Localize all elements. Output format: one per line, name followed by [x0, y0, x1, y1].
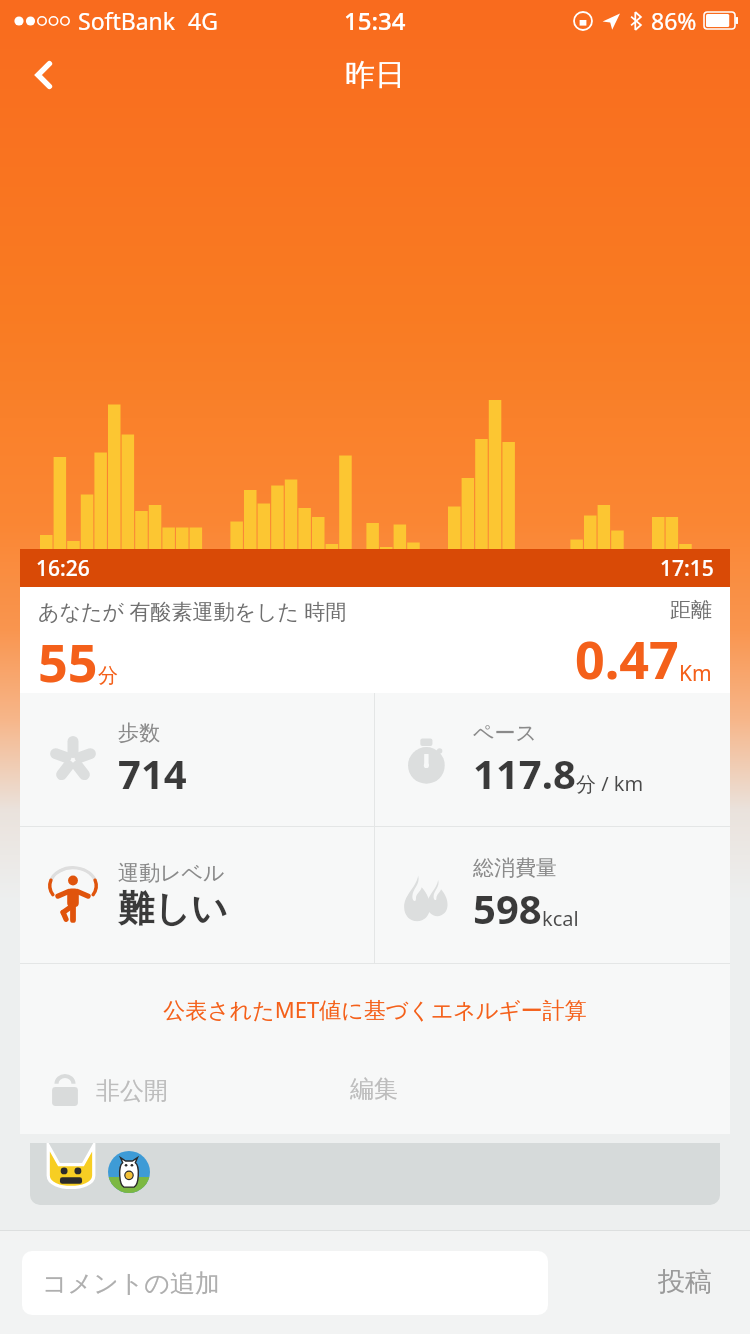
button[interactable]: 歩数 [20, 693, 374, 826]
staticText: 運動レベル [118, 860, 225, 886]
staticText: 17:15 [660, 554, 714, 583]
staticText: 15:34 [344, 4, 406, 37]
staticText: コメントの追加 [42, 1268, 220, 1299]
button[interactable] [30, 1143, 720, 1205]
staticText: 投稿 [658, 1265, 712, 1299]
staticText: 86% [651, 5, 697, 36]
staticText: kcal [542, 905, 579, 932]
staticText: 距離 [670, 597, 712, 623]
staticText: 非公開 [96, 1076, 168, 1106]
staticText: 分 [98, 663, 118, 688]
staticText: 598 [473, 881, 542, 935]
staticText: ペース [473, 720, 537, 746]
staticText: あなたが 有酸素運動をした 時間 [38, 597, 347, 626]
staticText: 714 [118, 746, 187, 800]
button[interactable]: Back [18, 49, 70, 101]
staticText: 0.47 [575, 623, 679, 693]
staticText: 難しい [118, 886, 228, 931]
button[interactable]: 投稿 [648, 1255, 722, 1309]
staticText: 117.8 [473, 746, 576, 800]
button[interactable]: 編集 [350, 1074, 398, 1104]
button[interactable]: 非公開 [48, 1074, 168, 1108]
button[interactable]: ペース [375, 693, 730, 826]
staticText: Km [679, 659, 712, 688]
staticText: SoftBank [78, 5, 176, 36]
button[interactable]: 公表されたMET値に基づくエネルギー計算 [163, 994, 587, 1024]
button[interactable]: コメントの追加 [22, 1251, 548, 1315]
staticText: 歩数 [118, 720, 160, 746]
staticText: 分 / km [576, 770, 644, 797]
staticText: 55 [38, 626, 98, 693]
button[interactable]: 総消費量 [375, 827, 730, 963]
staticText: 16:26 [36, 554, 90, 583]
staticText: 昨日 [345, 56, 405, 94]
button[interactable]: 運動レベル [20, 827, 374, 963]
staticText: 総消費量 [473, 855, 557, 881]
staticText: 4G [188, 5, 218, 36]
